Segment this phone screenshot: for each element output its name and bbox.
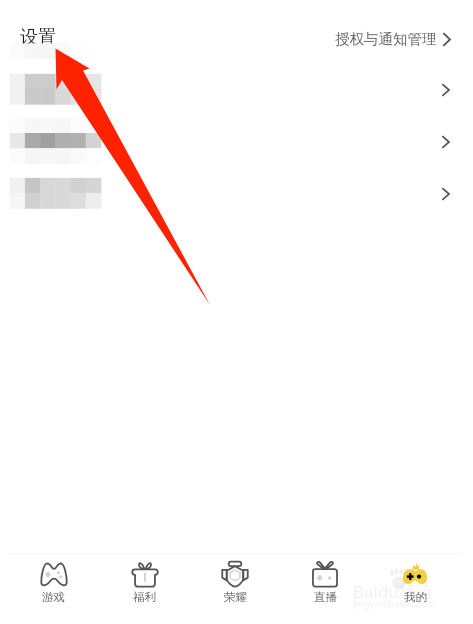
- button[interactable]: [0, 64, 473, 116]
- button[interactable]: 福利: [99, 552, 190, 604]
- button[interactable]: 直播: [280, 552, 370, 604]
- button[interactable]: [0, 168, 473, 220]
- staticText: 游戏: [42, 590, 65, 604]
- button[interactable]: 荣耀: [190, 552, 280, 604]
- button[interactable]: [0, 116, 473, 168]
- button[interactable]: 我的: [370, 552, 460, 604]
- staticText: 福利: [133, 590, 156, 604]
- staticText: jingyan.baidu.com: [353, 597, 436, 610]
- staticText: 荣耀: [224, 590, 247, 604]
- staticText: Baidu经验: [353, 580, 433, 603]
- staticText: 我的: [404, 590, 427, 604]
- button[interactable]: 游戏: [8, 552, 99, 604]
- staticText: 授权与通知管理: [335, 30, 437, 48]
- staticText: 设置: [20, 26, 56, 49]
- staticText: 直播: [314, 590, 337, 604]
- button[interactable]: 授权与通知管理: [335, 28, 473, 50]
